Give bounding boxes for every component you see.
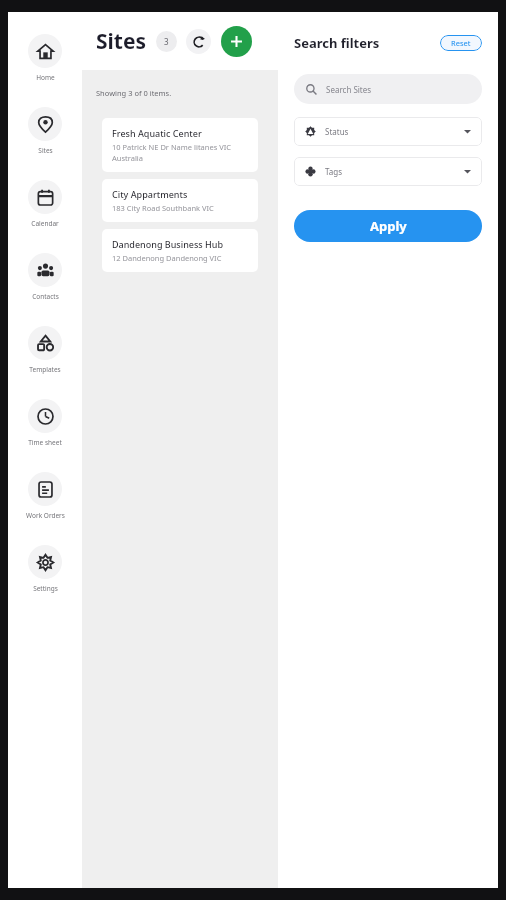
staticText: Status	[325, 126, 349, 137]
staticText: City Appartments	[112, 188, 188, 200]
button[interactable]: Calendar	[8, 176, 82, 232]
button[interactable]: Settings	[8, 541, 82, 597]
staticText: Settings	[33, 584, 58, 593]
staticText: Apply	[370, 217, 407, 235]
staticText: Sites	[96, 27, 147, 56]
button[interactable]: Work Orders	[8, 468, 82, 524]
button[interactable]: Tags	[294, 157, 482, 186]
button[interactable]: Contacts	[8, 249, 82, 305]
button[interactable]: Reset	[440, 35, 482, 51]
staticText: 10 Patrick NE Dr Name litanes VIC Austra…	[112, 142, 248, 163]
staticText: 3	[164, 36, 169, 47]
staticText: Tags	[325, 166, 343, 177]
staticText: Dandenong Business Hub	[112, 238, 224, 250]
staticText: Fresh Aquatic Center	[112, 127, 202, 139]
staticText: Time sheet	[28, 438, 62, 447]
button[interactable]: Apply	[294, 210, 482, 242]
staticText: 183 City Road Southbank VIC	[112, 203, 214, 213]
button[interactable]: Home	[8, 30, 82, 86]
staticText: Calendar	[31, 219, 59, 228]
staticText: Templates	[29, 365, 61, 374]
button[interactable]: Refresh	[186, 29, 211, 54]
button[interactable]: Templates	[8, 322, 82, 378]
button[interactable]: City Appartments	[102, 179, 258, 222]
button[interactable]: Time sheet	[8, 395, 82, 451]
button[interactable]: Sites	[8, 103, 82, 159]
staticText: Showing 3 of 0 items.	[96, 88, 172, 98]
staticText: Work Orders	[26, 511, 65, 520]
button[interactable]: Fresh Aquatic Center	[102, 118, 258, 172]
staticText: Contacts	[32, 292, 59, 301]
staticText: Home	[36, 73, 55, 82]
button[interactable]: Dandenong Business Hub	[102, 229, 258, 272]
button[interactable]: Add site	[221, 26, 252, 57]
staticText: 12 Dandenong Dandenong VIC	[112, 253, 222, 263]
button[interactable]: Status	[294, 117, 482, 146]
staticText: Sites	[38, 146, 53, 155]
staticText: Search Sites	[326, 84, 372, 95]
staticText: Reset	[451, 38, 471, 48]
staticText: Search filters	[294, 34, 380, 52]
button[interactable]: Search Sites	[294, 74, 482, 104]
